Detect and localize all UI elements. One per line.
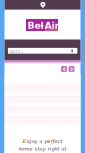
staticText: Bel [27, 20, 43, 31]
staticText: Go to ... [10, 49, 24, 54]
staticText: ✦ [39, 22, 44, 29]
button[interactable]: Location [39, 0, 47, 10]
button[interactable]: Previous page [61, 66, 67, 72]
button[interactable]: Go to ... [8, 48, 77, 54]
staticText: ‹ [62, 64, 65, 74]
staticText: boutique [45, 27, 59, 31]
staticText: › [70, 64, 73, 74]
staticText: Enjoy a perfect [22, 138, 62, 144]
staticText: home stay right at [18, 146, 66, 152]
button[interactable]: Bel [26, 19, 58, 31]
staticText: Air [44, 20, 59, 31]
button[interactable]: Next page [68, 66, 74, 72]
